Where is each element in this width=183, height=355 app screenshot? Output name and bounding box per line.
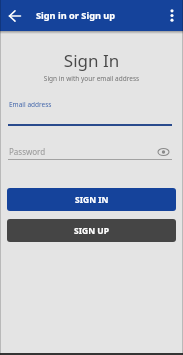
staticText: Password bbox=[9, 146, 46, 157]
staticText: SIGN IN bbox=[75, 194, 109, 206]
button[interactable]: SIGN UP bbox=[7, 219, 176, 242]
button[interactable] bbox=[161, 0, 183, 31]
staticText: Sign In bbox=[0, 49, 183, 72]
staticText: Email address bbox=[9, 100, 52, 109]
button[interactable] bbox=[0, 0, 30, 31]
button[interactable]: Password bbox=[0, 146, 183, 157]
button[interactable]: SIGN IN bbox=[7, 188, 176, 211]
staticText: Sign in or Sign up bbox=[36, 9, 116, 22]
staticText: SIGN UP bbox=[74, 225, 109, 237]
staticText: Sign in with your email address bbox=[0, 74, 183, 83]
button[interactable] bbox=[158, 148, 169, 156]
